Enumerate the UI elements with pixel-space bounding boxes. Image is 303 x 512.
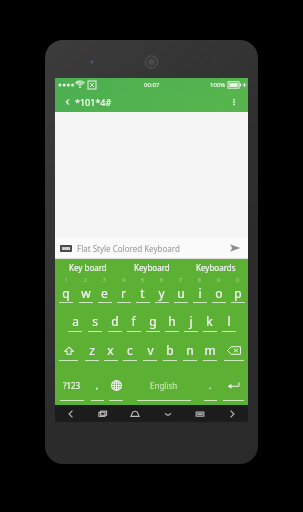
button[interactable]: Keyboard [120, 259, 184, 275]
button[interactable]: n [180, 336, 200, 365]
staticText: s [92, 313, 98, 329]
button[interactable]: . [201, 365, 219, 405]
button[interactable]: Key board [55, 259, 120, 275]
staticText: 6 [160, 277, 163, 284]
staticText: 7 [179, 277, 182, 284]
button[interactable]: Backspace [220, 336, 248, 365]
staticText: f [131, 313, 136, 329]
staticText: . [209, 380, 212, 391]
staticText: p [234, 285, 242, 301]
button[interactable]: j [181, 307, 200, 336]
button[interactable]: 0 [228, 275, 247, 307]
staticText: Flat Style Colored Keyboard [77, 243, 180, 254]
button[interactable]: 2 [76, 275, 95, 307]
staticText: l [227, 313, 231, 329]
staticText: English [150, 380, 178, 391]
button[interactable]: m [200, 336, 220, 365]
staticText: 0 [236, 277, 239, 284]
button[interactable]: 5 [133, 275, 152, 307]
button[interactable]: Keyboards [184, 259, 248, 275]
staticText: v [147, 342, 154, 358]
staticText: 3 [103, 277, 106, 284]
button[interactable]: c [120, 336, 140, 365]
button[interactable]: Switch keyboard [188, 405, 212, 422]
button[interactable]: Shift [55, 336, 82, 365]
button[interactable]: SMS [55, 237, 248, 259]
button[interactable]: h [162, 307, 181, 336]
staticText: x [107, 342, 114, 358]
staticText: 2 [84, 277, 87, 284]
button[interactable]: Next [220, 405, 244, 422]
staticText: n [186, 342, 194, 358]
staticText: 100% [210, 81, 226, 89]
button[interactable]: English [126, 365, 201, 405]
staticText: w [81, 285, 91, 301]
button[interactable]: a [65, 307, 85, 336]
staticText: m [204, 342, 216, 358]
button[interactable]: Home [123, 405, 147, 422]
staticText: k [206, 313, 213, 329]
staticText: g [149, 313, 157, 329]
button[interactable]: Hide keyboard [156, 405, 180, 422]
staticText: z [89, 342, 95, 358]
staticText: 8 [198, 277, 201, 284]
staticText: q [62, 285, 70, 301]
button[interactable]: 7 [171, 275, 190, 307]
button[interactable]: g [143, 307, 162, 336]
button[interactable]: v [140, 336, 160, 365]
staticText: , [96, 380, 99, 391]
staticText: 9 [217, 277, 220, 284]
staticText: 00:07 [144, 81, 160, 89]
staticText: h [168, 313, 176, 329]
button[interactable]: Recents [91, 405, 115, 422]
button[interactable]: , [88, 365, 106, 405]
button[interactable]: 6 [152, 275, 171, 307]
button[interactable]: 8 [190, 275, 209, 307]
button[interactable]: Change language [106, 365, 126, 405]
staticText: a [72, 313, 79, 329]
button[interactable]: Send [227, 240, 243, 256]
button[interactable]: Previous [59, 405, 83, 422]
staticText: d [111, 313, 119, 329]
staticText: o [215, 285, 223, 301]
button[interactable]: d [105, 307, 124, 336]
button[interactable]: More options [226, 94, 242, 110]
button[interactable]: x [101, 336, 120, 365]
staticText: Key board [69, 262, 107, 273]
staticText: e [101, 285, 108, 301]
button[interactable]: k [200, 307, 219, 336]
button[interactable]: f [124, 307, 143, 336]
button[interactable]: 1 [56, 275, 76, 307]
staticText: ?123 [63, 380, 81, 391]
staticText: c [127, 342, 133, 358]
staticText: 4 [122, 277, 125, 284]
staticText: SMS [62, 246, 71, 251]
button[interactable]: 3 [95, 275, 114, 307]
button[interactable]: 9 [209, 275, 228, 307]
staticText: i [198, 285, 202, 301]
button[interactable]: ?123 [55, 365, 88, 405]
staticText: Keyboard [134, 262, 170, 273]
staticText: r [121, 285, 126, 301]
button[interactable]: Back [61, 95, 75, 109]
button[interactable]: b [160, 336, 180, 365]
button[interactable]: 4 [114, 275, 133, 307]
staticText: t [140, 285, 145, 301]
staticText: Keyboards [196, 262, 236, 273]
staticText: j [189, 313, 193, 329]
staticText: *101*4# [75, 96, 112, 108]
staticText: u [177, 285, 185, 301]
button[interactable]: s [85, 307, 105, 336]
staticText: y [158, 285, 165, 301]
button[interactable]: Enter [219, 365, 248, 405]
staticText: b [166, 342, 174, 358]
staticText: 1 [65, 277, 68, 284]
button[interactable]: z [82, 336, 101, 365]
button[interactable]: l [219, 307, 238, 336]
staticText: 5 [141, 277, 144, 284]
